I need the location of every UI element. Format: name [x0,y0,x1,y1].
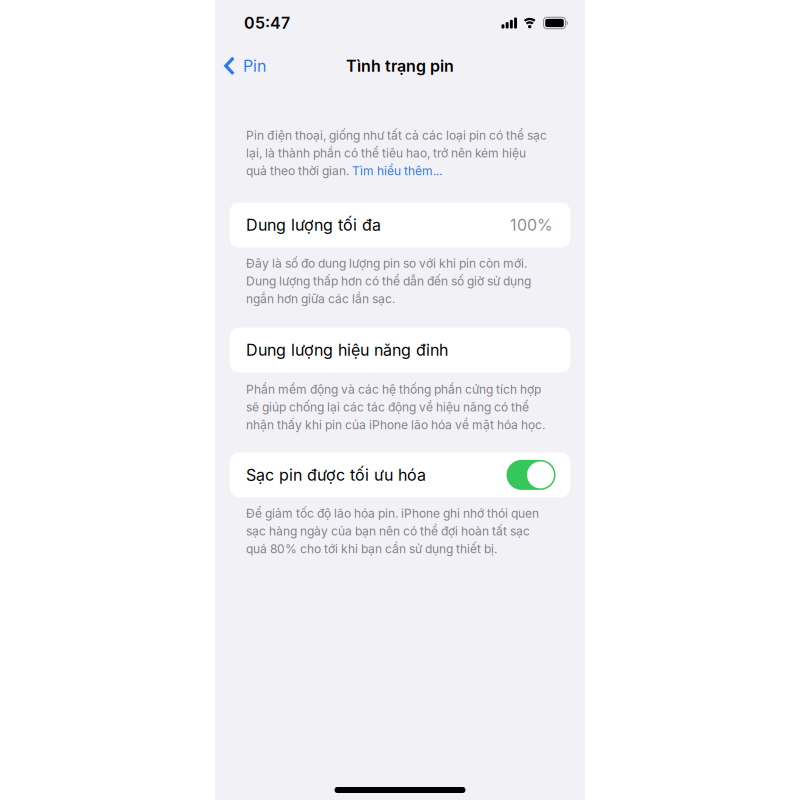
staticText: quả theo thời gian. [246,164,352,178]
button[interactable]: Dung lượng tối đa [229,202,570,247]
staticText: 100% [510,215,553,235]
staticText: nhận thấy khi pin của iPhone lão hóa về … [246,418,545,432]
button[interactable]: Sạc pin được tối ưu hóa [506,460,555,490]
staticText: Sạc pin được tối ưu hóa [246,465,426,485]
button[interactable]: Pin [215,56,266,76]
staticText: Đây là số đo dung lượng pin so với khi p… [246,256,527,271]
staticText: ngắn hơn giữa các lần sạc. [246,292,395,306]
staticText: Dung lượng thấp hơn có thể dẫn đến số gi… [246,274,531,288]
button[interactable]: Tìm hiểu thêm... [352,164,442,178]
staticText: Tìm hiểu thêm... [352,164,442,178]
staticText: sạc hàng ngày của bạn nên có thể đợi hoà… [246,524,530,538]
staticText: lại, là thành phần có thể tiêu hao, trở … [246,146,526,160]
staticText: quá 80% cho tới khi bạn cần sử dụng thiế… [246,542,497,556]
staticText: Phần mềm động và các hệ thống phần cứng … [246,382,541,397]
staticText: 05:47 [244,13,290,33]
staticText: Dung lượng hiệu năng đỉnh [246,340,448,360]
staticText: Pin điện thoại, giống như tất cả các loạ… [246,128,547,143]
staticText: sẽ giúp chống lại các tác động về hiệu n… [246,400,529,414]
button[interactable]: Dung lượng hiệu năng đỉnh [229,327,570,372]
staticText: Pin [243,56,266,76]
staticText: Để giảm tốc độ lão hóa pin. iPhone ghi n… [246,506,539,520]
staticText: Dung lượng tối đa [246,215,381,235]
staticText: Tình trạng pin [346,56,454,76]
